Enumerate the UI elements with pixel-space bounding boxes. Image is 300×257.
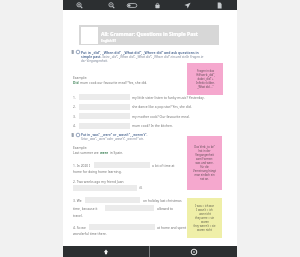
staticText: Für die	[200, 165, 209, 169]
staticText: Fragen in das	[197, 69, 214, 73]
staticText: Put in „was“, „were“ or „wasn’t“, „weren…	[81, 133, 153, 141]
staticText: 2.	[73, 104, 76, 108]
staticText: ill.	[139, 185, 143, 189]
staticText: Last summer we	[73, 150, 100, 154]
staticText: mum cook? In the kitchen.	[132, 123, 173, 127]
staticText: they weren't = sie	[193, 224, 216, 228]
button[interactable]: Share	[180, 0, 194, 10]
staticText: my little sister listen to funky music? …	[132, 95, 205, 99]
staticText: travel.	[73, 213, 83, 217]
button[interactable]: Zoom level	[125, 0, 139, 10]
staticText: waren	[201, 220, 209, 224]
staticText: English B1	[101, 39, 117, 43]
staticText: 3. We	[73, 198, 82, 202]
staticText: Verneinung hängt	[193, 169, 216, 173]
staticText: in Spain.	[109, 150, 124, 154]
staticText: Hilfsverb „did“,	[196, 73, 215, 77]
staticText: was und were.	[195, 161, 214, 165]
staticText: war nicht	[199, 212, 211, 216]
button[interactable]: Lock rotation	[150, 0, 164, 10]
staticText: „What did ...“	[197, 85, 214, 89]
staticText: wonderful time there.	[73, 231, 107, 235]
staticText: 2. Two weeks ago my friend Juan	[73, 179, 124, 183]
button[interactable]: Upload	[63, 246, 149, 257]
staticText: allowed to	[157, 206, 173, 210]
staticText: Example:	[73, 75, 88, 79]
staticText: were	[100, 150, 109, 154]
staticText: man einfach ein	[194, 173, 215, 177]
staticText: I was = ich war	[195, 204, 214, 208]
staticText: zwei Formen:	[196, 157, 213, 161]
staticText: Vergangenheit	[195, 153, 214, 157]
staticText: a lot of time at	[152, 163, 175, 167]
staticText: my mother cook? Our favourite meal.	[132, 114, 190, 118]
staticText: 1. In 2020 I	[73, 163, 91, 167]
staticText: not an.	[200, 177, 209, 181]
staticText: time, because it	[73, 206, 98, 210]
button[interactable]: Info	[150, 246, 237, 257]
staticText: hat in der	[198, 149, 211, 153]
staticText: home for doing home learning.	[73, 169, 122, 173]
staticText: 3.	[73, 114, 76, 118]
staticText: at home and spent a	[157, 225, 189, 229]
staticText: she dance like a pop star? Yes, she did.	[132, 104, 192, 108]
staticText: Example:	[73, 145, 88, 149]
staticText: on holiday last christmas	[143, 198, 182, 202]
button[interactable]: Zoom out	[104, 0, 118, 10]
staticText: Das Verb „to be“	[194, 145, 215, 149]
staticText: Put in „did“, „When did“, „What did“, „W…	[81, 50, 206, 63]
staticText: 4. So we	[73, 225, 86, 229]
staticText: 1.	[73, 95, 76, 99]
staticText: Infinitiv bilden.	[196, 81, 215, 85]
staticText: they were = sie	[195, 216, 214, 220]
staticText: A8: Grammar: Questions in Simple Past	[101, 31, 198, 38]
staticText: mum cook our favourite meal? Yes, she di…	[80, 80, 148, 84]
staticText: 4.	[73, 123, 76, 127]
staticText: Did	[73, 80, 79, 84]
staticText: dabei „did“ +	[197, 77, 214, 81]
button[interactable]: Zoom in	[72, 0, 86, 10]
staticText: waren nicht	[197, 228, 212, 232]
button[interactable]: Document info	[212, 0, 226, 10]
staticText: I wasn't = ich	[196, 208, 213, 212]
